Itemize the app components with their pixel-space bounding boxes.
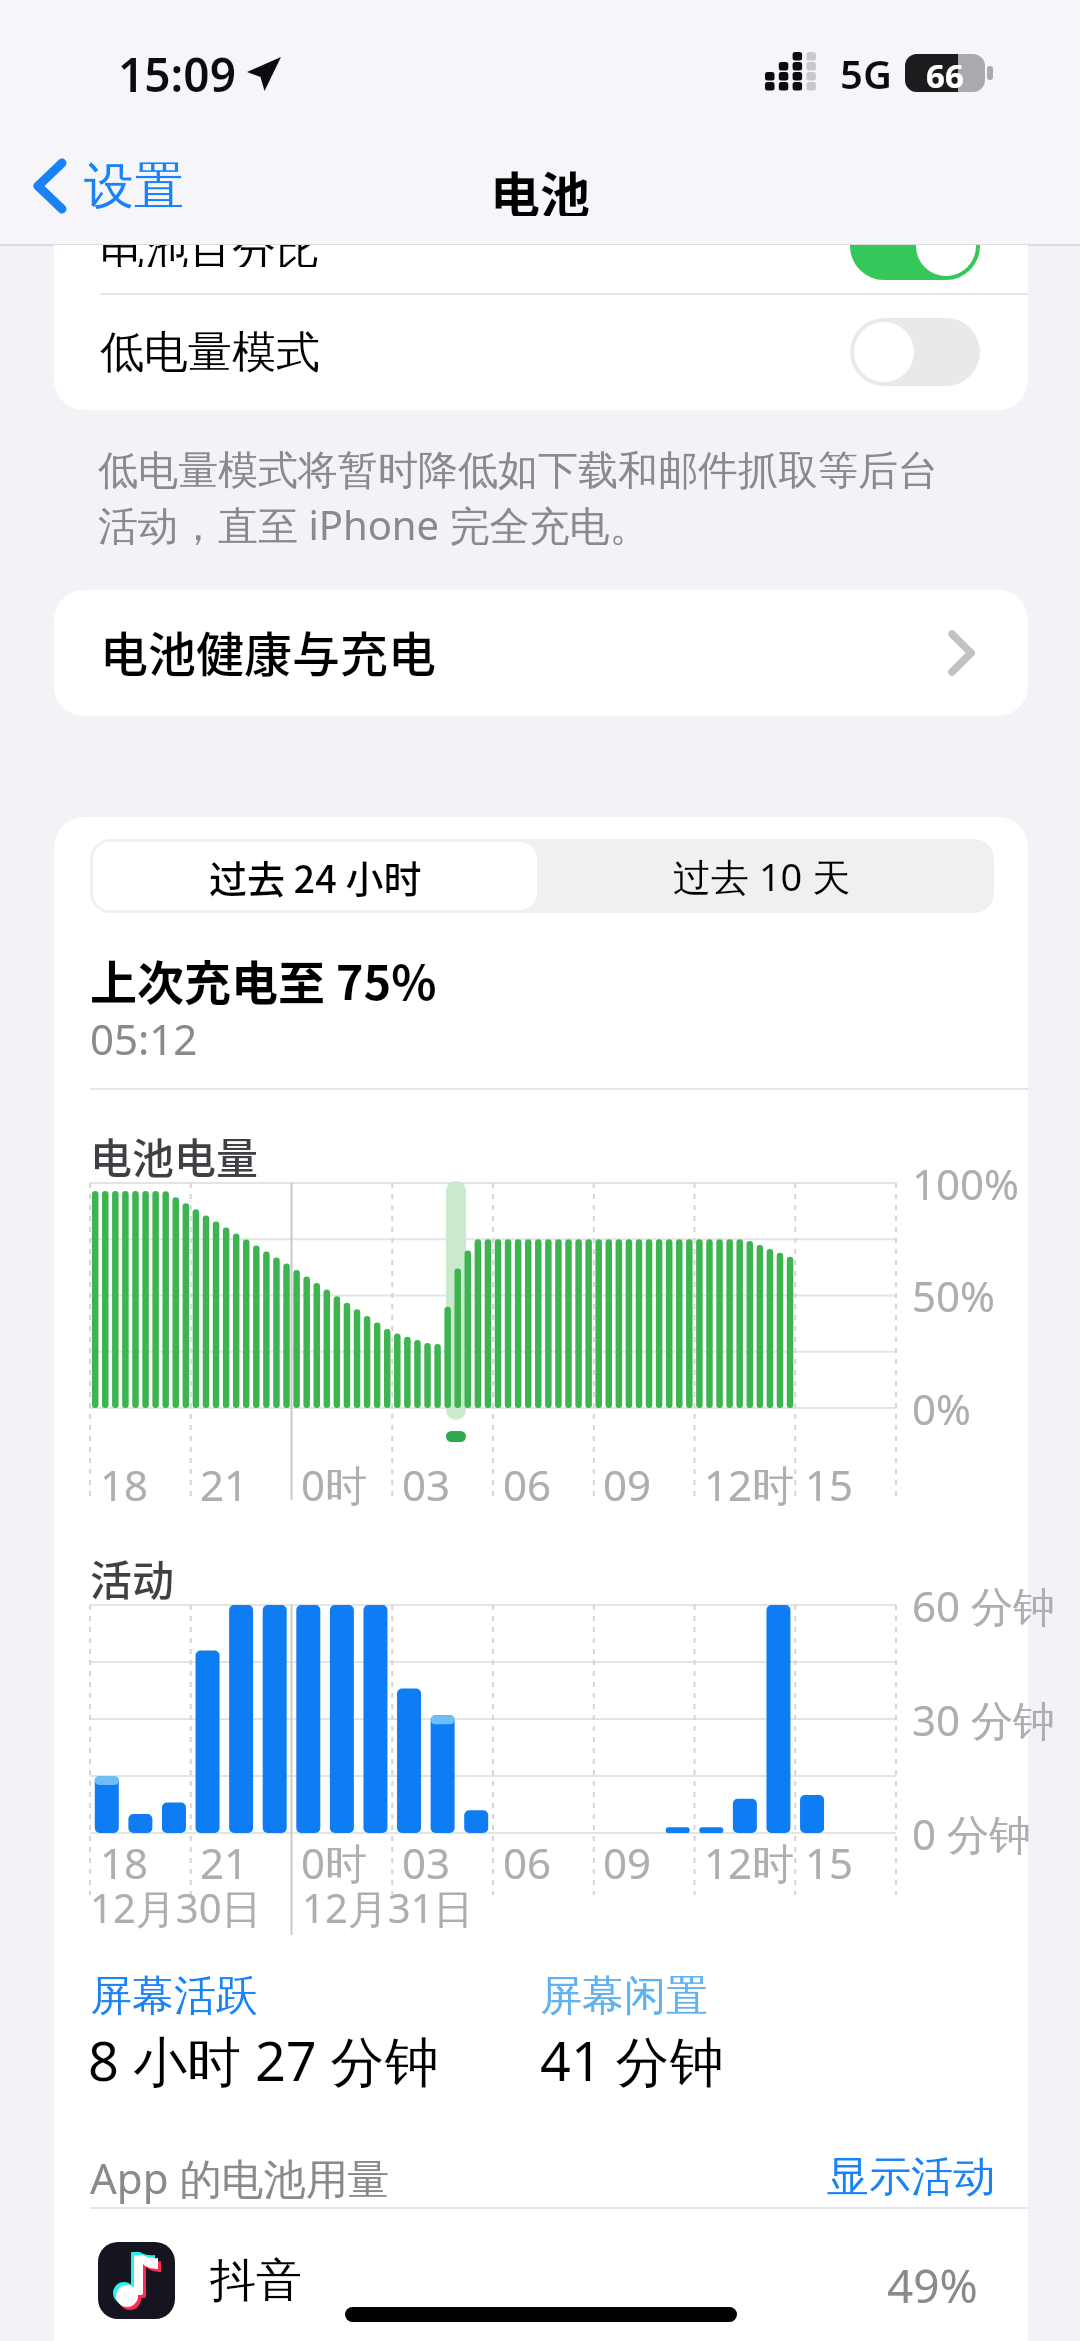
staticText: 12时 — [704, 1456, 795, 1513]
staticText: 49% — [887, 2254, 978, 2317]
staticText: 活动，直至 iPhone 完全充电。 — [98, 497, 650, 552]
staticText: 100% — [912, 1155, 1019, 1212]
staticText: 活动 — [90, 1547, 175, 1608]
staticText: 过去 10 天 — [673, 850, 851, 902]
button[interactable] — [93, 842, 537, 910]
staticText: 抖音 — [210, 2252, 302, 2310]
staticText: 显示活动 — [827, 2151, 995, 2204]
staticText: 60 分钟 — [912, 1577, 1055, 1634]
staticText: 0时 — [301, 1456, 368, 1513]
button[interactable] — [32, 160, 70, 212]
button[interactable]: 显示活动 — [795, 2137, 995, 2217]
staticText: 低电量模式 — [100, 325, 320, 380]
button[interactable]: 设置 — [84, 146, 244, 226]
staticText: 21 — [200, 1834, 249, 1891]
staticText: 12时 — [704, 1834, 795, 1891]
staticText: 8 小时 27 分钟 — [88, 2023, 439, 2097]
staticText: 过去 24 小时 — [209, 849, 422, 904]
staticText: 03 — [402, 1456, 451, 1513]
staticText: 12月31日 — [302, 1880, 474, 1935]
button[interactable] — [54, 590, 1028, 716]
staticText: 41 分钟 — [540, 2023, 724, 2097]
staticText: 09 — [603, 1834, 652, 1891]
staticText: 0% — [912, 1380, 971, 1437]
button[interactable] — [537, 842, 987, 910]
staticText: 低电量模式将暂时降低如下载和邮件抓取等后台 — [98, 445, 938, 495]
staticText: 15:09 — [118, 43, 236, 106]
staticText: 15 — [805, 1456, 854, 1513]
staticText: 05:12 — [90, 1010, 198, 1067]
staticText: 5G — [840, 46, 892, 100]
staticText: 30 分钟 — [912, 1691, 1055, 1748]
staticText: 0时 — [301, 1834, 368, 1891]
staticText: 18 — [100, 1456, 149, 1513]
staticText: 18 — [100, 1834, 149, 1891]
staticText: 电池电量 — [90, 1125, 259, 1186]
staticText: 设置 — [84, 155, 184, 218]
staticText: 屏幕活跃 — [90, 1970, 258, 2023]
staticText: 66 — [926, 53, 964, 93]
staticText: App 的电池用量 — [90, 2149, 390, 2206]
staticText: 50% — [912, 1267, 995, 1324]
staticText: 06 — [503, 1456, 552, 1513]
staticText: 电池百分比 — [100, 245, 320, 267]
staticText: 电池健康与充电 — [100, 616, 437, 686]
button[interactable]: 低电量模式 — [100, 312, 500, 392]
staticText: 屏幕闲置 — [540, 1970, 708, 2023]
staticText: 12月30日 — [90, 1880, 262, 1935]
button[interactable] — [850, 318, 980, 386]
staticText: 电池 — [490, 156, 590, 216]
staticText: 15 — [805, 1834, 854, 1891]
staticText: 21 — [200, 1456, 249, 1513]
staticText: 03 — [402, 1834, 451, 1891]
staticText: 06 — [503, 1834, 552, 1891]
button[interactable] — [54, 2228, 1028, 2341]
staticText: 上次充电至 75% — [90, 945, 437, 1013]
staticText: 09 — [603, 1456, 652, 1513]
staticText: 0 分钟 — [912, 1805, 1031, 1862]
